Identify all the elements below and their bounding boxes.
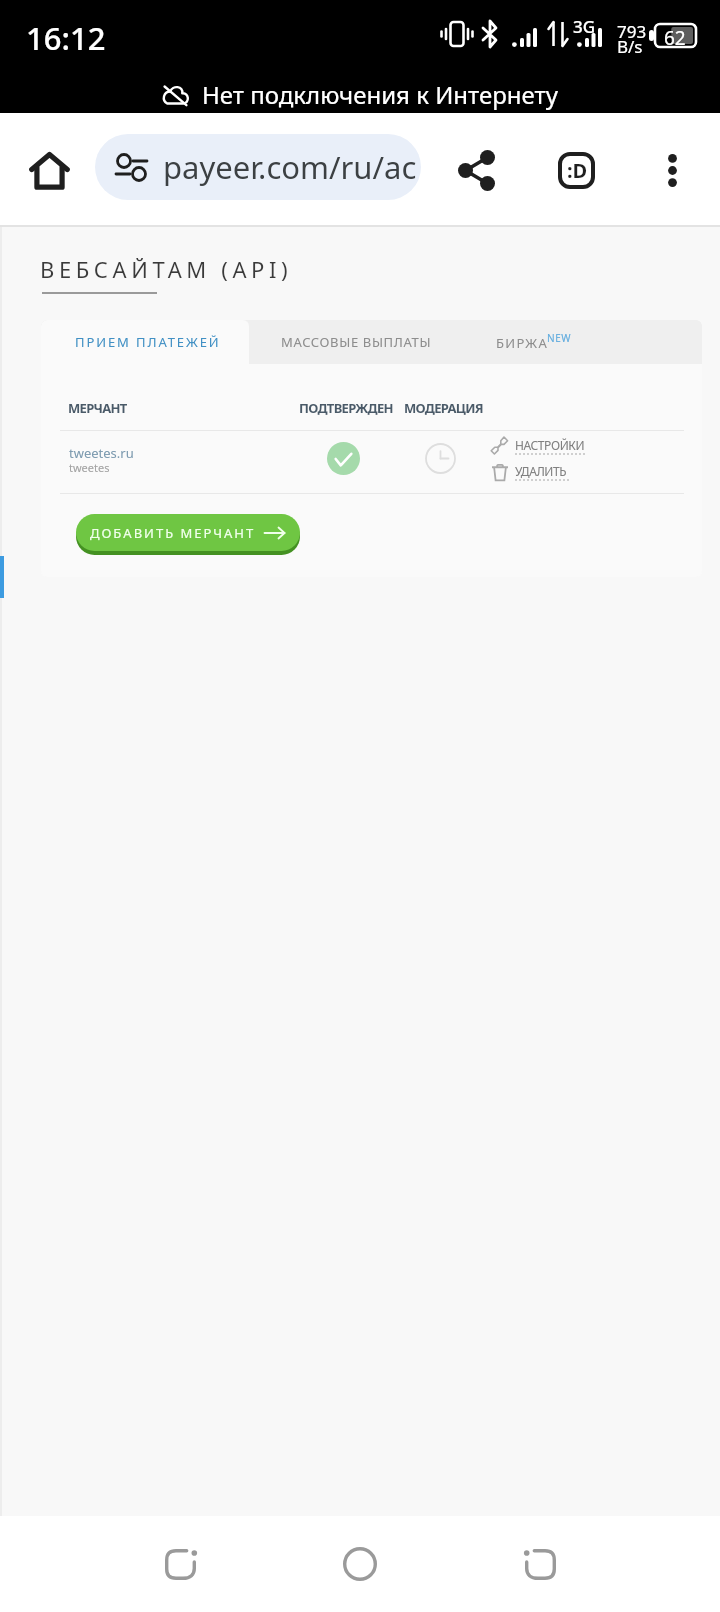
button[interactable]: Home [14, 133, 82, 201]
button[interactable]: ПРИЕМ ПЛАТЕЖЕЙ [41, 320, 249, 364]
staticText: ПРИЕМ ПЛАТЕЖЕЙ [75, 333, 221, 351]
button[interactable]: Home [320, 1539, 400, 1589]
button[interactable]: Share [442, 133, 510, 201]
staticText: 16:12 [26, 17, 106, 59]
staticText: payeer.com/ru/ac [163, 146, 417, 188]
staticText: 793 [617, 20, 647, 43]
staticText: МОДЕРАЦИЯ [404, 399, 483, 417]
button[interactable]: Recent apps [140, 1539, 220, 1589]
staticText: МАССОВЫЕ ВЫПЛАТЫ [281, 333, 432, 351]
staticText: МЕРЧАНТ [68, 399, 127, 417]
button[interactable]: ДОБАВИТЬ МЕРЧАНТ [76, 514, 300, 551]
staticText: БИРЖА [496, 334, 548, 352]
staticText: ПОДТВЕРЖДЕН [299, 399, 393, 417]
staticText: tweetes [69, 460, 110, 475]
staticText: НАСТРОЙКИ [515, 437, 585, 453]
staticText: ДОБАВИТЬ МЕРЧАНТ [90, 524, 256, 542]
staticText: УДАЛИТЬ [515, 463, 567, 479]
button[interactable]: МАССОВЫЕ ВЫПЛАТЫ [261, 320, 451, 364]
staticText: ВЕБСАЙТАМ (API) [40, 254, 293, 284]
button[interactable]: УДАЛИТЬ [490, 462, 570, 482]
button[interactable]: НАСТРОЙКИ [490, 436, 585, 456]
button[interactable]: payeer.com/ru/ac [95, 134, 421, 200]
staticText: 62 [664, 25, 686, 51]
staticText: 3G [573, 15, 596, 38]
staticText: NEW [547, 331, 572, 345]
button[interactable]: Profile [542, 136, 610, 204]
button[interactable]: Back [500, 1539, 580, 1589]
staticText: tweetes.ru [69, 444, 134, 462]
staticText: :D [567, 157, 588, 184]
staticText: Нет подключения к Интернету [202, 78, 558, 111]
staticText: B/s [617, 35, 643, 58]
button[interactable]: More options [638, 133, 706, 201]
button[interactable]: БИРЖА [481, 320, 621, 364]
